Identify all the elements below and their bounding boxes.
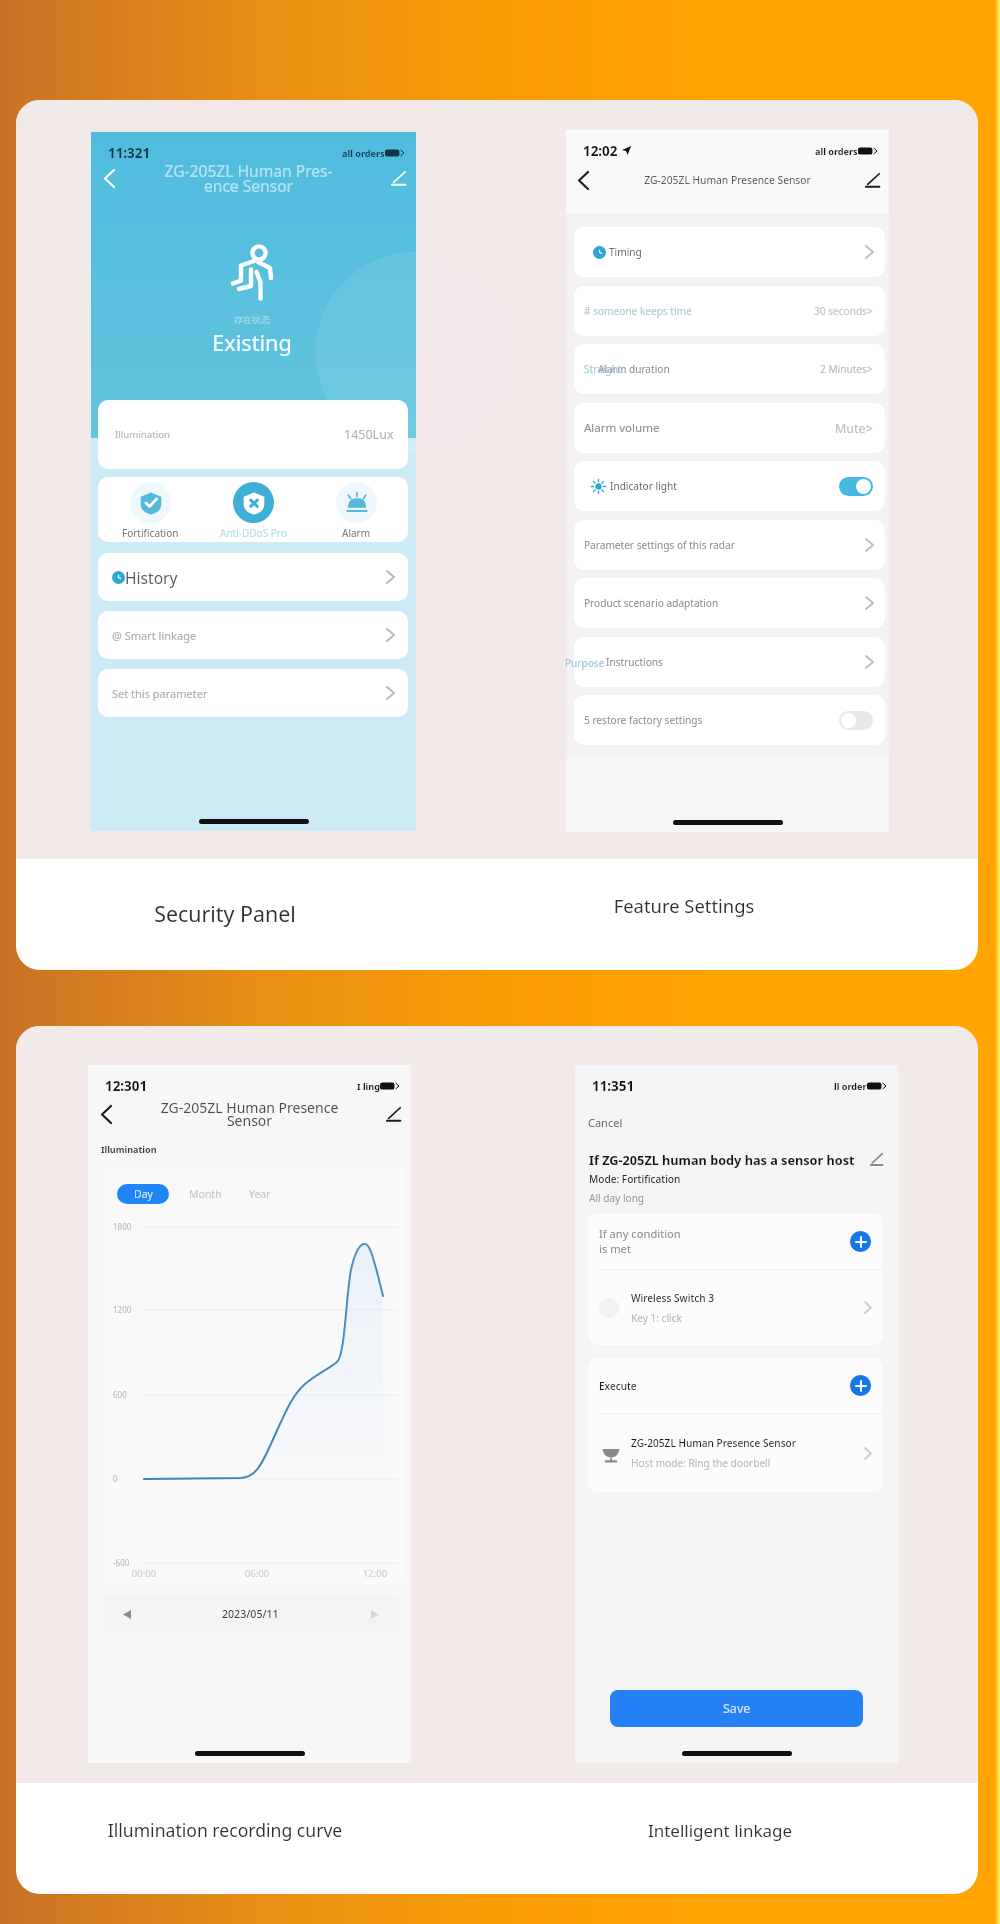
staticText: I ling <box>357 1080 380 1092</box>
button[interactable]: @ Smart linkage <box>98 611 408 659</box>
button[interactable]: ZG-205ZL Human Presence Sensor <box>599 1414 871 1492</box>
staticText: 1200 <box>113 1304 132 1315</box>
staticText: Fortification <box>122 526 179 540</box>
staticText: Illumination <box>101 1143 157 1155</box>
button[interactable]: Set this parameter <box>98 669 408 717</box>
staticText: ZG-205ZL Human Presence Sensor <box>124 1098 375 1130</box>
button[interactable]: Illumination <box>98 400 408 469</box>
staticText: 00:00 <box>105 1567 184 1580</box>
staticText: Save <box>723 1700 751 1717</box>
staticText: Illumination <box>115 428 171 441</box>
staticText: 12:301 <box>105 1077 148 1095</box>
staticText: 2023/05/11 <box>222 1607 279 1621</box>
button[interactable]: Indicator light <box>574 461 885 511</box>
staticText: Set this parameter <box>112 686 208 701</box>
button[interactable]: Timing <box>574 227 885 277</box>
staticText: If any condition is met <box>599 1226 681 1256</box>
staticText: 1450Lux <box>344 426 394 443</box>
button[interactable]: Switch off <box>839 711 873 730</box>
button[interactable]: Edit <box>867 1150 885 1168</box>
staticText: If ZG-205ZL human body has a sensor host <box>589 1151 855 1168</box>
staticText: Straight <box>584 362 622 376</box>
button[interactable]: Product scenario adaptation <box>574 578 885 628</box>
staticText: Alarm <box>342 526 371 540</box>
staticText: Intelligent linkage <box>520 1819 920 1842</box>
staticText: All day long <box>589 1191 645 1205</box>
button[interactable]: Back <box>88 1097 124 1131</box>
button[interactable]: Edit <box>375 1097 411 1131</box>
staticText: 11:321 <box>108 144 151 162</box>
button[interactable]: Back <box>566 166 600 194</box>
staticText: Alarm volume <box>584 420 660 436</box>
staticText: 06:00 <box>217 1567 297 1580</box>
staticText: Cancel <box>588 1115 623 1130</box>
staticText: Security Panel <box>25 899 425 928</box>
button[interactable]: Cancel <box>588 1111 623 1133</box>
button[interactable]: Next day <box>365 1604 385 1624</box>
staticText: @ Smart linkage <box>112 628 197 643</box>
staticText: Host mode: Ring the doorbell <box>631 1456 771 1470</box>
button[interactable]: Add <box>850 1231 871 1252</box>
staticText: 1800 <box>113 1221 132 1232</box>
staticText: Alarm duration <box>598 362 670 376</box>
staticText: ZG-205ZL Human Pres- ence Sensor <box>122 160 375 196</box>
button[interactable]: Previous day <box>117 1604 137 1624</box>
staticText: all orders <box>342 147 385 159</box>
button[interactable]: Alarm volume <box>574 403 885 453</box>
staticText: Timing <box>609 245 642 259</box>
staticText: Mute> <box>835 420 873 437</box>
button[interactable]: Edit <box>855 166 889 194</box>
staticText: 2 Minutes> <box>820 362 873 376</box>
staticText: ll order <box>834 1080 867 1092</box>
button[interactable]: Alarm <box>305 477 408 542</box>
staticText: Anti-DDoS Pro <box>220 526 287 540</box>
staticText: Day <box>134 1187 153 1201</box>
button[interactable]: Back <box>91 160 127 196</box>
staticText: 12:02 <box>583 142 618 160</box>
staticText: Product scenario adaptation <box>584 596 719 610</box>
button[interactable]: Day <box>117 1184 169 1204</box>
staticText: Illumination recording curve <box>25 1818 425 1842</box>
button[interactable]: Anti-DDoS Pro <box>202 477 305 542</box>
button[interactable]: Save <box>610 1690 863 1727</box>
staticText: 存在状态 <box>152 314 352 326</box>
button[interactable]: History <box>98 553 408 601</box>
button[interactable]: Parameter settings of this radar <box>574 520 885 570</box>
button[interactable]: Alarm duration <box>574 344 885 394</box>
staticText: Instructions <box>606 655 663 669</box>
button[interactable]: Month <box>180 1184 230 1204</box>
staticText: History <box>125 567 178 588</box>
staticText: Key 1: click <box>631 1311 682 1325</box>
staticText: Mode: Fortification <box>589 1172 681 1186</box>
staticText: Purpose <box>565 656 605 670</box>
staticText: -600 <box>113 1557 130 1568</box>
staticText: Wireless Switch 3 <box>631 1291 715 1305</box>
staticText: 600 <box>113 1389 127 1400</box>
button[interactable]: # someone keeps time <box>574 286 885 336</box>
staticText: Execute <box>599 1379 637 1393</box>
button[interactable]: Edit <box>380 160 416 196</box>
button[interactable]: Fortification <box>98 477 202 542</box>
staticText: Existing <box>152 328 352 358</box>
staticText: all orders <box>815 145 858 157</box>
staticText: 11:351 <box>592 1077 635 1095</box>
staticText: 12:00 <box>335 1567 405 1580</box>
staticText: Parameter settings of this radar <box>584 538 735 552</box>
button[interactable]: Year <box>239 1184 281 1204</box>
button[interactable]: 5 restore factory settings <box>574 695 885 745</box>
staticText: Feature Settings <box>484 893 884 918</box>
button[interactable]: Add <box>850 1375 871 1396</box>
staticText: ZG-205ZL Human Presence Sensor <box>631 1436 797 1450</box>
staticText: 5 restore factory settings <box>584 713 703 727</box>
button[interactable]: Switch on <box>839 477 873 496</box>
staticText: 0 <box>113 1473 118 1484</box>
staticText: ZG-205ZL Human Presence Sensor <box>600 173 855 187</box>
staticText: Indicator light <box>610 479 677 493</box>
button[interactable]: Instructions <box>574 637 885 687</box>
staticText: 30 seconds> <box>814 304 873 318</box>
button[interactable]: Wireless Switch 3 <box>599 1270 871 1345</box>
staticText: Year <box>249 1187 271 1201</box>
staticText: # someone keeps time <box>584 304 692 318</box>
staticText: Month <box>189 1187 222 1201</box>
